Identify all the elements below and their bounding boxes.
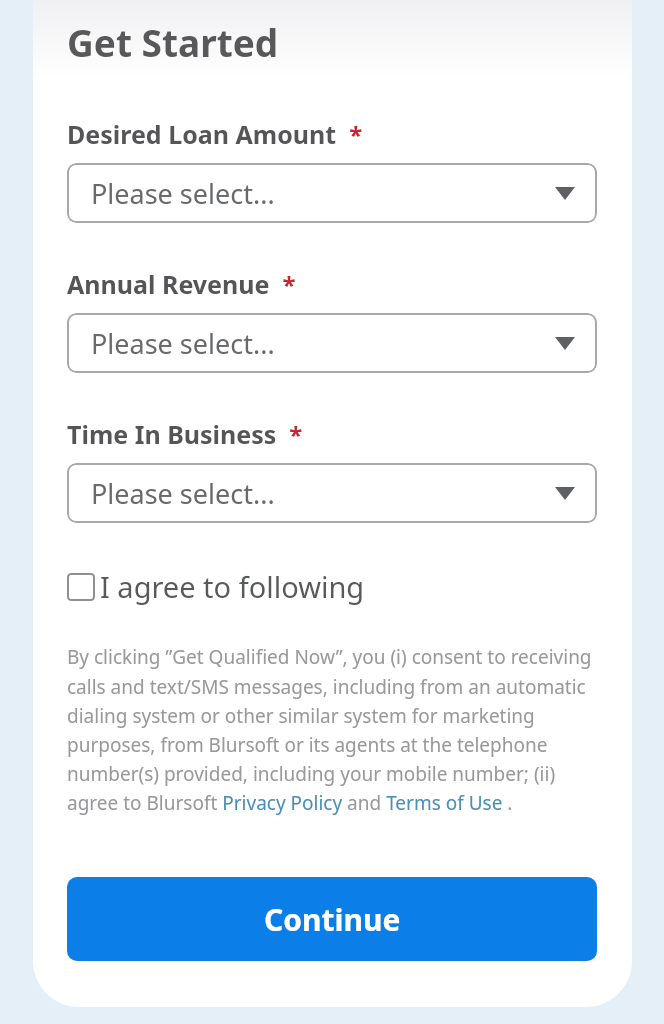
staticText: By clicking ”Get Qualified Now”, you (i)… bbox=[67, 644, 597, 815]
button[interactable]: I agree to following bbox=[67, 565, 365, 608]
button[interactable]: Please select... bbox=[67, 463, 597, 523]
staticText: Please select... bbox=[91, 325, 275, 362]
staticText: Annual Revenue * bbox=[67, 267, 296, 301]
staticText: Please select... bbox=[91, 175, 275, 212]
staticText: Please select... bbox=[91, 475, 275, 512]
staticText: Get Started bbox=[67, 17, 279, 67]
button[interactable]: Please select... bbox=[67, 163, 597, 223]
button[interactable]: Continue bbox=[67, 877, 597, 961]
staticText: Time In Business * bbox=[67, 417, 303, 451]
staticText: Desired Loan Amount * bbox=[67, 117, 363, 151]
button[interactable]: Please select... bbox=[67, 313, 597, 373]
staticText: Continue bbox=[264, 899, 401, 940]
staticText: I agree to following bbox=[100, 567, 365, 606]
